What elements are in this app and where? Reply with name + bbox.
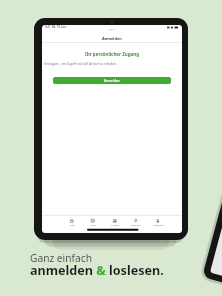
staticText: Ihr persönlicher Zugang	[85, 51, 140, 57]
staticText: Anmelden	[102, 36, 122, 41]
staticText: Hefte	[90, 224, 96, 227]
button[interactable]: Hefte	[84, 219, 102, 228]
staticText: Start	[70, 224, 75, 227]
button[interactable]: Merkliste	[127, 219, 145, 228]
staticText: Anmelden	[104, 79, 120, 83]
staticText: Anmelden	[153, 224, 164, 227]
button[interactable]: Anmelden	[53, 77, 171, 84]
button[interactable]: Start	[63, 219, 81, 228]
staticText: 9:41 Mi. 10. Jan.	[45, 25, 67, 29]
staticText: Einloggen, um Zugriff auf alle Artikel z…	[44, 62, 118, 66]
staticText: Ganz einfach	[30, 251, 92, 265]
button[interactable]: Themen	[106, 219, 124, 228]
staticText: anmelden & loslesen.	[30, 262, 164, 279]
staticText: Merkliste	[131, 224, 141, 227]
staticText: Themen	[111, 224, 120, 227]
button[interactable]: Anmelden	[149, 219, 167, 228]
